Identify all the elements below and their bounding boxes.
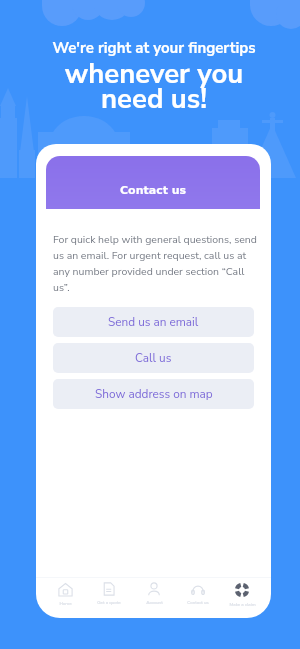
- staticText: whenever you need us!: [4, 55, 300, 117]
- staticText: Call us: [135, 350, 172, 366]
- staticText: Send us an email: [108, 314, 199, 330]
- button[interactable]: Make a claim: [225, 578, 259, 607]
- other: Make a claim: [234, 582, 250, 598]
- button[interactable]: Get a quote: [92, 578, 126, 605]
- staticText: Show address on map: [95, 386, 213, 402]
- other: Contact us: [191, 582, 205, 596]
- staticText: Get a quote: [97, 599, 121, 605]
- button[interactable]: Account: [137, 578, 171, 605]
- other: Account: [147, 582, 161, 596]
- button[interactable]: Show address on map: [53, 379, 254, 409]
- staticText: Contact us: [187, 599, 209, 605]
- staticText: Make a claim: [229, 601, 256, 607]
- staticText: Account: [146, 599, 163, 605]
- other: Get a quote: [102, 582, 116, 596]
- button[interactable]: Call us: [53, 343, 254, 373]
- staticText: Contact us: [120, 184, 187, 197]
- staticText: Home: [59, 600, 72, 606]
- button[interactable]: Contact us: [181, 578, 215, 605]
- other: Home: [58, 582, 73, 597]
- staticText: For quick help with general questions, s…: [53, 232, 258, 295]
- button[interactable]: Send us an email: [53, 307, 254, 337]
- staticText: We're right at your fingertips: [4, 38, 300, 58]
- button[interactable]: Home: [48, 578, 82, 606]
